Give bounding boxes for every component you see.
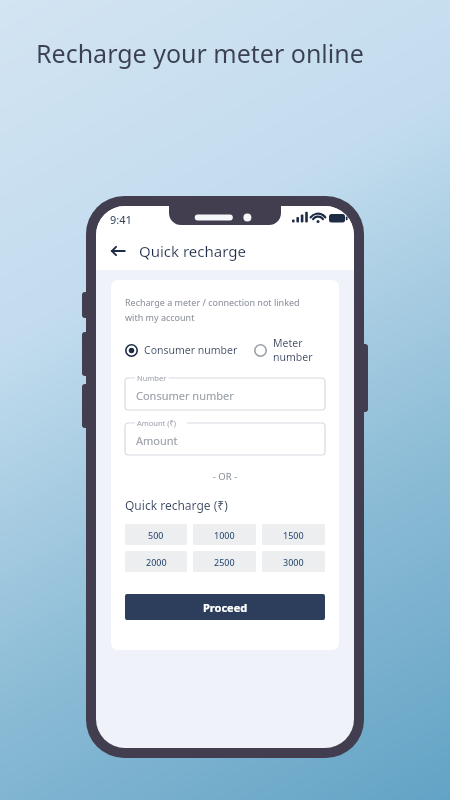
button[interactable]: 3000 [262, 551, 325, 572]
staticText: 1500 [283, 529, 304, 541]
button[interactable]: Back [104, 237, 132, 265]
staticText: Proceed [203, 600, 248, 615]
staticText: Quick recharge [139, 241, 246, 261]
staticText: 2500 [214, 556, 235, 568]
button[interactable]: 500 [125, 524, 187, 545]
button[interactable]: Amount (₹) [125, 423, 325, 455]
button[interactable]: 1000 [193, 524, 256, 545]
staticText: 2000 [146, 556, 167, 568]
button[interactable]: Consumer number [125, 343, 238, 357]
staticText: 3000 [283, 556, 304, 568]
staticText: Consumer number [144, 343, 238, 357]
staticText: 500 [148, 529, 164, 541]
staticText: Consumer number [136, 388, 234, 403]
staticText: Amount (₹) [137, 418, 177, 428]
staticText: Number [137, 373, 167, 383]
staticText: Amount [136, 433, 178, 448]
button[interactable]: Proceed [125, 594, 325, 620]
button[interactable]: 2000 [125, 551, 187, 572]
staticText: Recharge your meter online [36, 36, 364, 70]
staticText: Recharge a meter / connection not linked [125, 296, 300, 308]
staticText: - OR - [125, 470, 325, 483]
staticText: with my account [125, 311, 195, 323]
button[interactable]: Number [125, 378, 325, 410]
staticText: 9:41 [110, 212, 132, 227]
button[interactable]: 1500 [262, 524, 325, 545]
staticText: 1000 [214, 529, 235, 541]
staticText: Quick recharge (₹) [125, 497, 228, 513]
button[interactable]: Meter number [254, 336, 325, 364]
staticText: Meter number [273, 336, 325, 364]
button[interactable]: 2500 [193, 551, 256, 572]
